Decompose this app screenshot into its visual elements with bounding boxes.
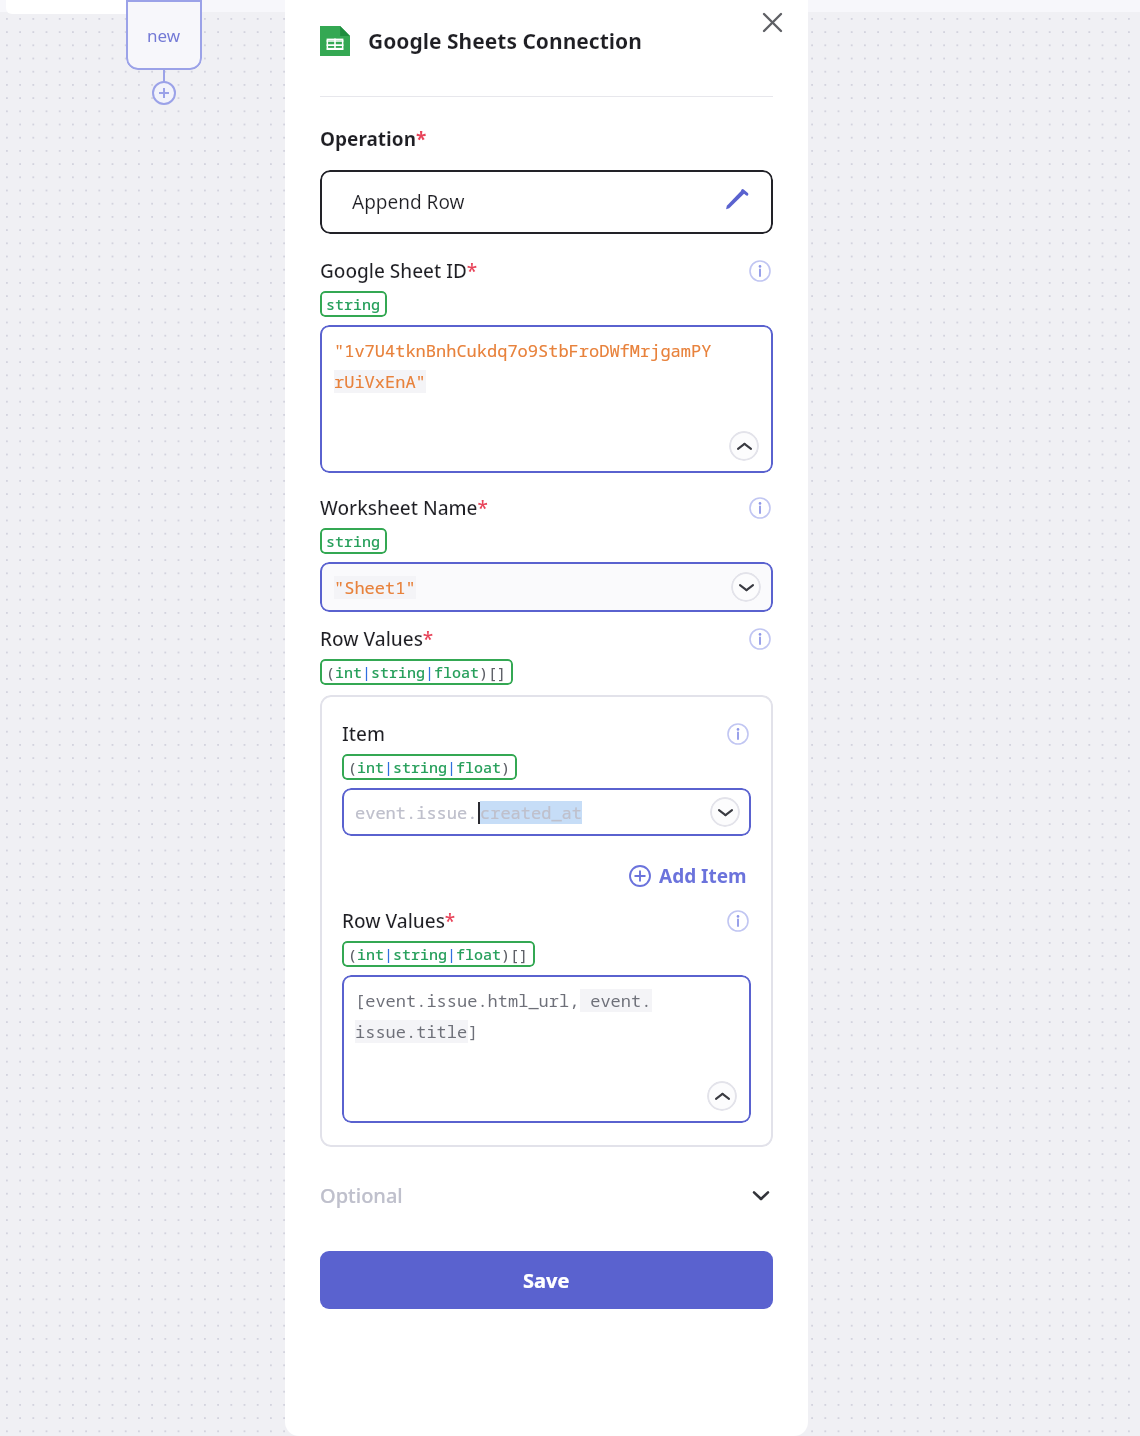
button[interactable]: new [126,0,202,70]
staticText: created_at [480,801,582,824]
staticText: Save [523,1267,570,1294]
staticText: rUiVxEnA" [334,370,426,393]
staticText: (int|string|float) [348,757,511,777]
button[interactable]: Info about Google Sheet ID [747,258,773,284]
button[interactable]: Save [320,1251,773,1309]
staticText: Row Values* [342,908,456,934]
button[interactable]: "1v7U4tknBnhCukdq7o9StbFroDWfMrjgamPY [320,325,773,473]
staticText: (int|string|float)[] [348,944,529,964]
staticText: Optional [320,1182,403,1209]
button[interactable]: Expand [710,797,740,827]
staticText: string [326,531,381,551]
button[interactable]: "Sheet1" [320,562,773,612]
other: Edit operation [723,188,751,216]
staticText: string [326,294,381,314]
staticText: event.issue. [355,801,478,824]
other: Add node [126,70,202,105]
button[interactable]: Close [756,6,788,38]
staticText: Row Values* [320,626,434,652]
button[interactable]: Info about Row Values [725,908,751,934]
staticText: event. [580,989,652,1012]
staticText: Worksheet Name* [320,495,488,521]
staticText: Google Sheets Connection [368,27,642,56]
button[interactable]: Collapse [729,431,759,461]
button[interactable]: Info about Item [725,721,751,747]
staticText: "Sheet1" [334,576,416,599]
button[interactable]: Append Row [320,170,773,234]
staticText: new [147,24,181,47]
staticText: (int|string|float)[] [326,662,507,682]
staticText: Google Sheet ID* [320,258,478,284]
staticText: [event.issue.html_url, [355,989,580,1012]
staticText: ] [468,1020,479,1043]
staticText: Add Item [659,863,747,889]
button[interactable]: Collapse [707,1081,737,1111]
button[interactable]: [event.issue.html_url, [342,975,751,1123]
button[interactable]: Info about Worksheet Name [747,495,773,521]
staticText: Append Row [352,189,465,215]
staticText: Operation* [320,126,427,152]
button[interactable]: Add Item [625,860,751,892]
button[interactable]: Optional [320,1169,773,1221]
button[interactable]: Info about Row Values [747,626,773,652]
staticText: Item [342,721,385,747]
button[interactable]: Expand options [731,572,761,602]
button[interactable]: event.issue. [342,788,751,836]
staticText: "1v7U4tknBnhCukdq7o9StbFroDWfMrjgamPY [334,339,712,362]
staticText: issue.title [355,1020,468,1043]
